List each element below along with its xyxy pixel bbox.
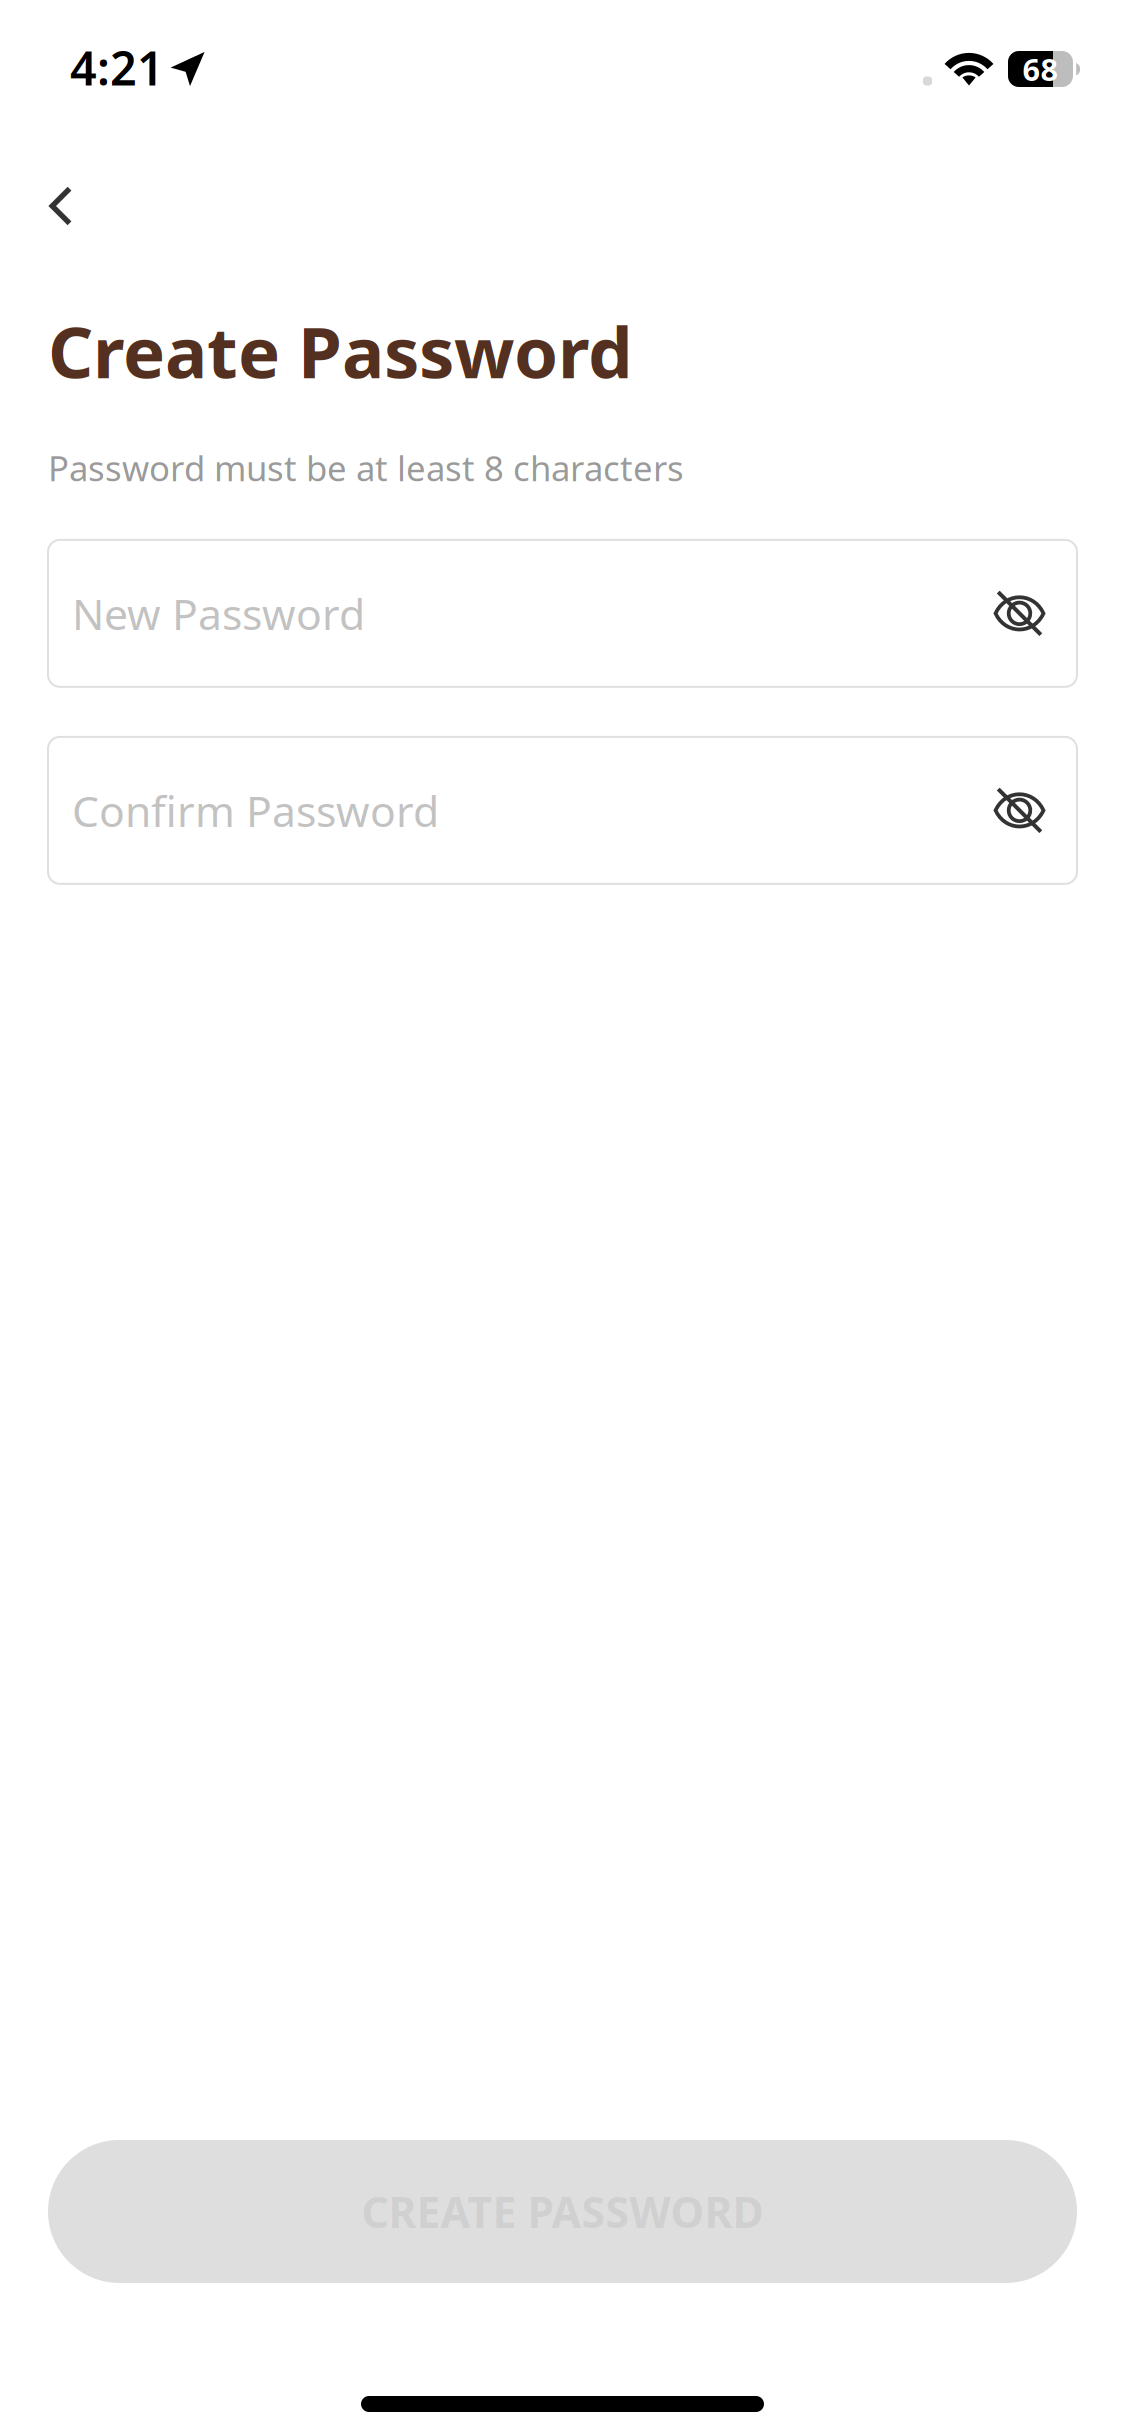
staticText: 4:21: [70, 36, 164, 98]
staticText: Create Password: [48, 304, 633, 398]
staticText: Confirm Password: [72, 782, 439, 839]
button[interactable]: Show Confirm Password: [962, 736, 1077, 885]
button[interactable]: Back: [15, 160, 107, 252]
staticText: CREATE PASSWORD: [361, 2183, 763, 2240]
staticText: Password must be at least 8 characters: [48, 445, 684, 491]
button[interactable]: CREATE PASSWORD: [48, 2140, 1077, 2283]
button[interactable]: Show New Password: [962, 539, 1077, 688]
staticText: New Password: [72, 585, 365, 642]
staticText: 68: [1022, 49, 1058, 89]
